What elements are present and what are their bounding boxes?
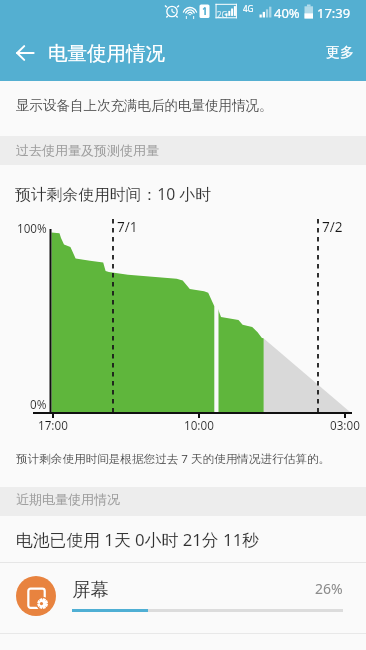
staticText: 40% [274,4,300,22]
staticText: 电量使用情况 [48,41,165,66]
staticText: 03:00 [330,417,360,433]
staticText: 4G [243,3,254,14]
staticText: 近期电量使用情况 [16,491,120,507]
staticText: 2G [217,9,228,20]
button[interactable]: 屏幕 [0,562,366,633]
staticText: 过去使用量及预测使用量 [16,142,159,158]
staticText: 26% [315,579,343,598]
staticText: 预计剩余使用时间是根据您过去 7 天的使用情况进行估算的。 [16,451,331,467]
staticText: 电池已使用 1天 0小时 21分 11秒 [16,528,260,551]
staticText: 更多 [326,44,354,62]
staticText: 预计剩余使用时间：10 小时 [15,183,211,205]
staticText: 10:00 [184,417,214,433]
button[interactable]: 返回 [5,33,45,73]
staticText: 100% [17,220,47,236]
staticText: 显示设备自上次充满电后的电量使用情况。 [16,97,273,114]
staticText: 7/2 [322,217,343,236]
staticText: 7/1 [117,217,138,236]
staticText: 17:39 [317,4,351,22]
staticText: 屏幕 [72,578,109,601]
staticText: 17:00 [38,417,68,433]
staticText: 0% [30,396,47,412]
button[interactable]: 更多 [313,33,366,73]
